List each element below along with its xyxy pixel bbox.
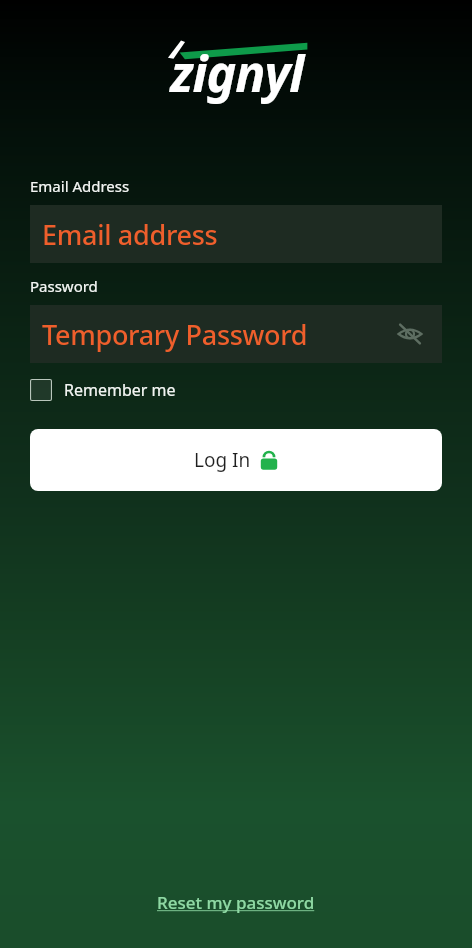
button[interactable]: Reset my password xyxy=(149,885,323,920)
button[interactable]: Log In xyxy=(30,429,442,491)
button[interactable]: Remember me xyxy=(30,377,176,403)
staticText: zignyl xyxy=(170,39,304,107)
staticText: Password xyxy=(30,276,98,296)
button[interactable]: Temporary Password xyxy=(30,305,442,363)
staticText: Reset my password xyxy=(157,891,315,914)
staticText: Email address xyxy=(42,216,218,253)
staticText: Temporary Password xyxy=(42,316,308,353)
button[interactable]: Show password xyxy=(390,314,430,354)
staticText: Log In xyxy=(194,447,251,473)
staticText: Email Address xyxy=(30,176,130,196)
staticText: Remember me xyxy=(64,379,176,401)
button[interactable]: Email address xyxy=(30,205,442,263)
